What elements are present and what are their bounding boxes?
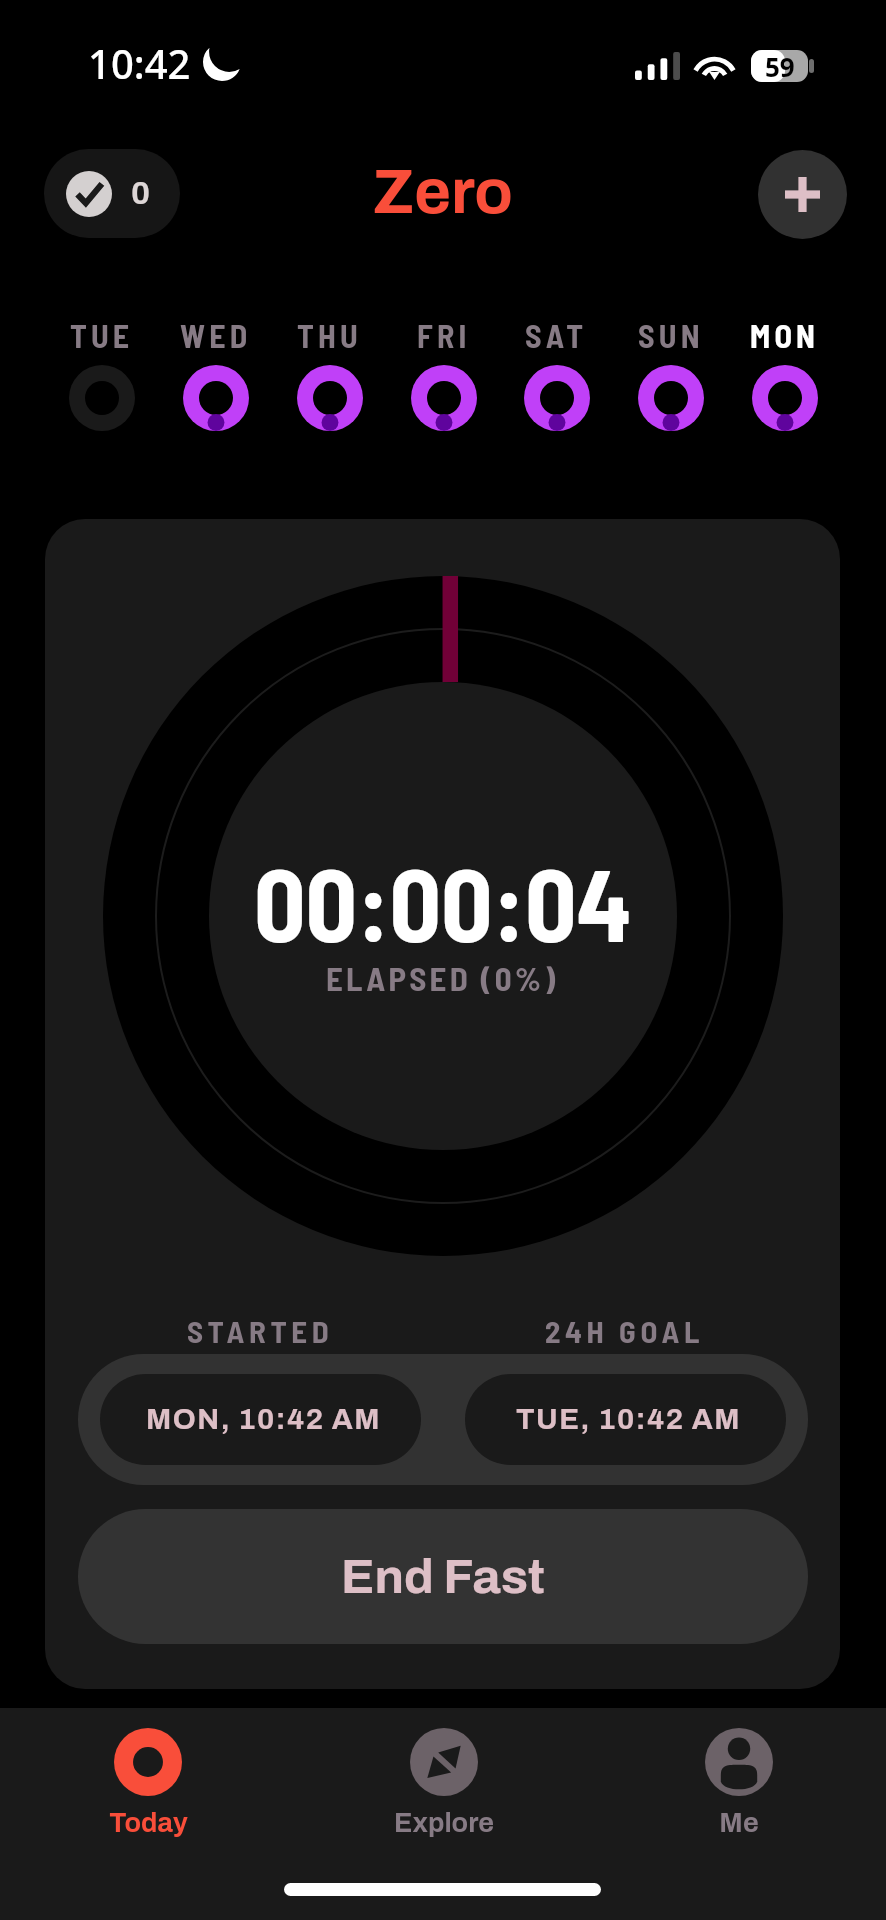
staticText: 10:42: [88, 36, 191, 90]
button[interactable]: WED: [159, 316, 272, 431]
staticText: MON: [750, 316, 820, 354]
button[interactable]: 0: [44, 149, 180, 238]
staticText: ELAPSED (0%): [326, 958, 559, 998]
button[interactable]: Me: [591, 1728, 886, 1837]
button[interactable]: TUE: [45, 316, 158, 431]
staticText: WED: [180, 316, 252, 354]
staticText: Explore: [394, 1808, 494, 1837]
staticText: FRI: [417, 316, 471, 354]
staticText: 00:00:04: [254, 841, 632, 962]
staticText: STARTED: [187, 1312, 334, 1349]
staticText: Me: [719, 1808, 759, 1837]
button[interactable]: Add: [758, 150, 847, 239]
button[interactable]: Today: [0, 1728, 296, 1837]
staticText: Today: [109, 1808, 188, 1837]
staticText: 24H GOAL: [545, 1312, 705, 1349]
button[interactable]: MON: [728, 316, 841, 431]
button[interactable]: Explore: [296, 1728, 591, 1837]
button[interactable]: SAT: [500, 316, 613, 431]
staticText: 59: [765, 49, 795, 81]
staticText: MON, 10:42 AM: [146, 1404, 382, 1436]
staticText: SAT: [525, 316, 588, 354]
button[interactable]: THU: [273, 316, 386, 431]
staticText: THU: [297, 316, 362, 354]
button[interactable]: FRI: [387, 316, 500, 431]
staticText: Zero: [373, 158, 513, 227]
staticText: SUN: [638, 316, 704, 354]
button[interactable]: SUN: [614, 316, 727, 431]
button[interactable]: MON, 10:42 AM: [100, 1374, 421, 1465]
staticText: TUE, 10:42 AM: [516, 1404, 741, 1436]
staticText: 0: [131, 176, 151, 211]
staticText: TUE: [70, 316, 134, 354]
button[interactable]: TUE, 10:42 AM: [465, 1374, 786, 1465]
button[interactable]: End Fast: [78, 1509, 808, 1644]
staticText: End Fast: [341, 1550, 545, 1603]
